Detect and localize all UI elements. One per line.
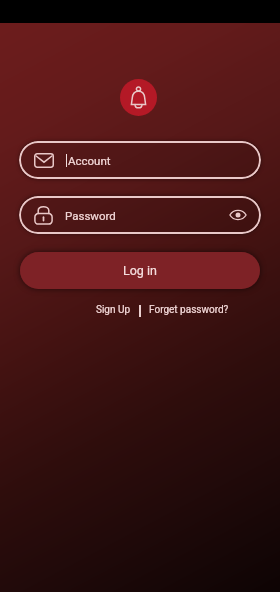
button[interactable]: Sign Up	[96, 304, 131, 316]
staticText: Log in	[123, 263, 157, 278]
staticText: Sign Up	[96, 304, 131, 316]
button[interactable]: Notifications	[120, 79, 157, 116]
staticText: Account	[68, 154, 111, 167]
button[interactable]: Log in	[20, 252, 260, 289]
staticText: Password	[65, 209, 116, 222]
button[interactable]: Password	[19, 196, 261, 234]
button[interactable]: Forget password?	[149, 304, 229, 316]
staticText: Forget password?	[149, 304, 229, 316]
button[interactable]: Show password	[227, 204, 249, 226]
button[interactable]: Account	[19, 141, 261, 179]
